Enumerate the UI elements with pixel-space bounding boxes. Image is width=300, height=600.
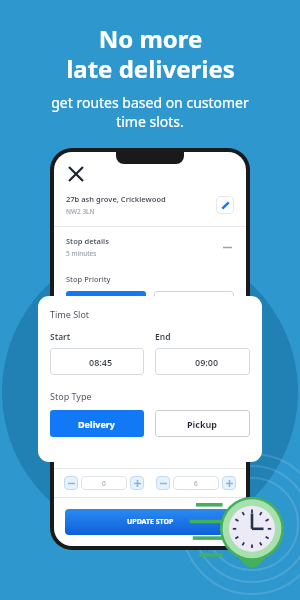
other: Time slot clock <box>212 492 292 572</box>
button[interactable]: Delivery <box>50 410 144 437</box>
staticText: 09:00 <box>195 356 219 368</box>
button[interactable]: 08:45 <box>50 348 144 375</box>
button[interactable]: Increase <box>222 476 236 490</box>
staticText: UPDATE STOP <box>127 517 174 527</box>
staticText: 27b ash grove, Cricklewood <box>66 194 166 204</box>
staticText: Start <box>50 331 71 343</box>
button[interactable]: Decrease <box>64 476 78 490</box>
button[interactable]: UPDATE STOP <box>65 509 235 535</box>
button[interactable]: Increase <box>130 476 144 490</box>
button[interactable]: Edit address <box>216 196 234 214</box>
staticText: 08:45 <box>89 356 113 368</box>
staticText: Stop Type <box>50 390 92 402</box>
staticText: End <box>155 331 171 343</box>
button[interactable]: Collapse <box>220 240 234 254</box>
staticText: Stop details <box>66 236 109 246</box>
staticText: Time Slot <box>50 308 90 320</box>
staticText: No more late deliveries <box>66 22 235 85</box>
button[interactable]: Close <box>66 164 86 184</box>
staticText: Stop Priority <box>66 274 111 284</box>
button[interactable]: ASAP <box>154 291 234 310</box>
staticText: Delivery <box>78 418 116 430</box>
staticText: Pickup <box>187 418 218 430</box>
staticText: 0 <box>102 479 106 488</box>
staticText: get routes based on customer time slots. <box>51 93 249 131</box>
button[interactable]: Pickup <box>155 410 250 437</box>
button[interactable]: 09:00 <box>155 348 250 375</box>
staticText: 5 minutes <box>66 249 97 258</box>
button[interactable]: Decrease <box>156 476 170 490</box>
button[interactable]: Normal <box>66 291 146 310</box>
staticText: NW2 3LN <box>66 207 95 216</box>
staticText: 6 <box>194 479 198 488</box>
